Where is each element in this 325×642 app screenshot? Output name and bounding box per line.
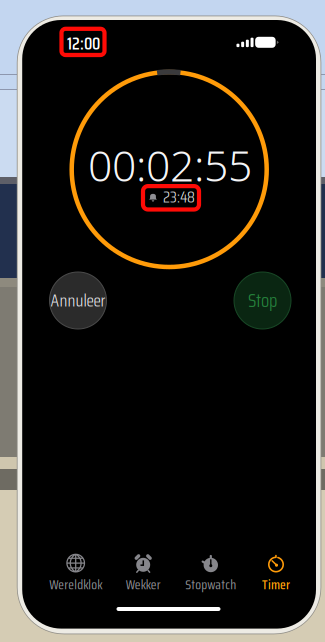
staticText: Timer — [262, 574, 290, 595]
staticText: Wekker — [126, 574, 161, 595]
staticText: Wereldklok — [49, 574, 102, 595]
button[interactable]: Wekker — [108, 551, 178, 597]
button[interactable]: Stop — [234, 272, 291, 329]
staticText: 23:48 — [163, 184, 195, 210]
staticText: Annuleer — [50, 287, 105, 314]
button[interactable]: Annuleer — [49, 272, 106, 329]
staticText: Stop — [248, 286, 277, 315]
staticText: Stopwatch — [185, 574, 236, 595]
staticText: 00:02:55 — [88, 137, 252, 193]
button[interactable]: Timer — [241, 551, 311, 597]
button[interactable]: Stopwatch — [176, 551, 246, 597]
staticText: 12:00 — [67, 30, 100, 57]
button[interactable]: Wereldklok — [41, 551, 111, 597]
